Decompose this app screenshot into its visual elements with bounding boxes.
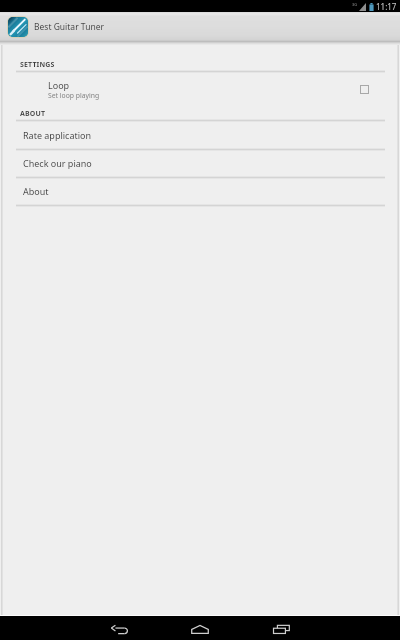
staticText: Rate application <box>23 129 92 141</box>
button[interactable]: Rate application <box>0 121 400 149</box>
button[interactable]: Loop <box>0 72 400 106</box>
staticText: ABOUT <box>20 109 46 119</box>
button[interactable]: Recent apps <box>264 616 298 640</box>
button[interactable]: Back <box>102 616 136 640</box>
staticText: Check our piano <box>23 157 92 169</box>
staticText: Best Guitar Tuner <box>34 21 104 33</box>
button[interactable]: Home <box>183 616 217 640</box>
staticText: 11:17 <box>376 1 397 12</box>
button[interactable]: About <box>0 178 400 205</box>
staticText: Loop <box>48 79 70 91</box>
staticText: SETTINGS <box>20 60 55 70</box>
button[interactable]: Check our piano <box>0 150 400 177</box>
staticText: 3G <box>352 2 358 7</box>
staticText: Set loop playing <box>48 91 100 100</box>
staticText: About <box>23 185 49 197</box>
